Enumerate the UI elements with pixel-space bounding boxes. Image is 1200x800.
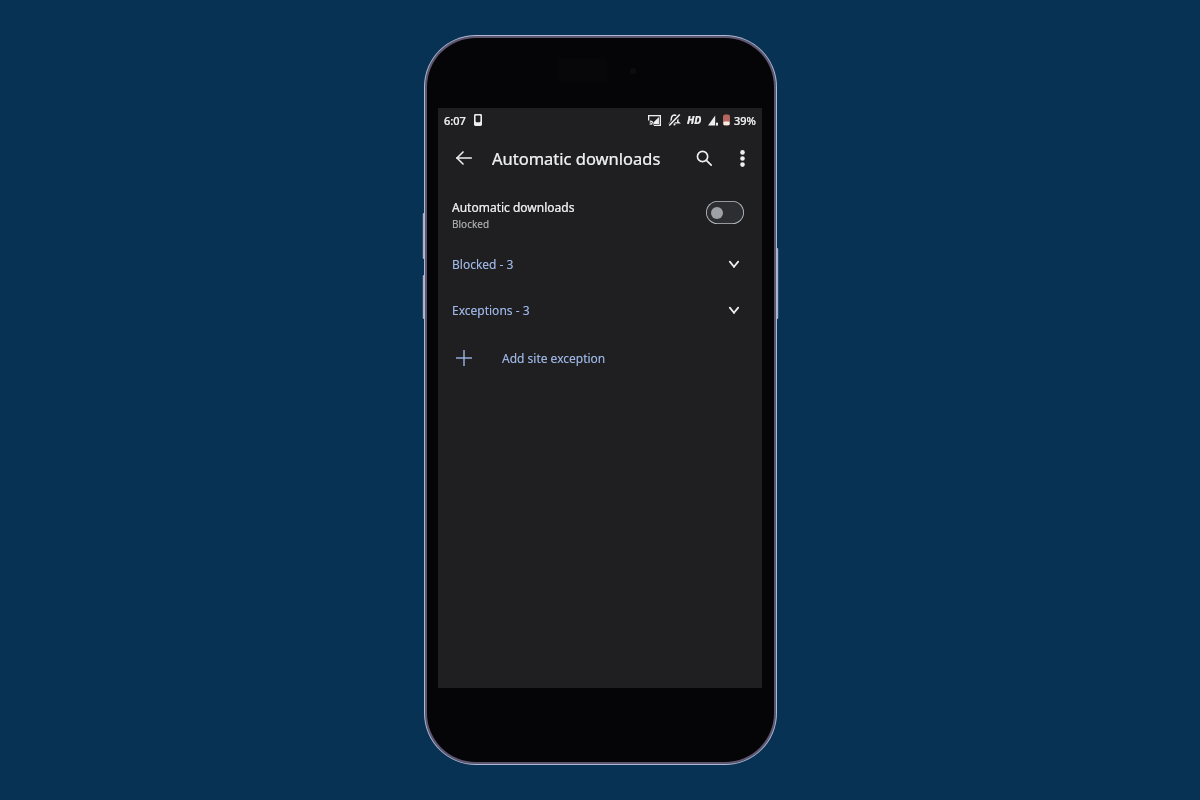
staticText: Blocked bbox=[452, 217, 490, 231]
staticText: 39% bbox=[734, 113, 756, 128]
staticText: Add site exception bbox=[502, 350, 606, 366]
button[interactable]: Automatic downloads toggle bbox=[706, 201, 744, 224]
button[interactable]: More options bbox=[725, 141, 759, 175]
button[interactable]: Search bbox=[687, 141, 721, 175]
staticText: Automatic downloads bbox=[452, 199, 575, 215]
button[interactable]: Blocked - 3 bbox=[438, 252, 762, 276]
staticText: HD bbox=[687, 113, 702, 127]
button[interactable]: Exceptions - 3 bbox=[438, 298, 762, 322]
button[interactable]: Automatic downloads bbox=[438, 193, 762, 237]
button[interactable]: Back bbox=[447, 141, 481, 175]
staticText: Exceptions - 3 bbox=[452, 302, 530, 318]
staticText: 6:07 bbox=[444, 113, 466, 128]
staticText: Blocked - 3 bbox=[452, 256, 514, 272]
staticText: Automatic downloads bbox=[492, 147, 661, 169]
button[interactable]: Add site exception bbox=[438, 338, 762, 378]
